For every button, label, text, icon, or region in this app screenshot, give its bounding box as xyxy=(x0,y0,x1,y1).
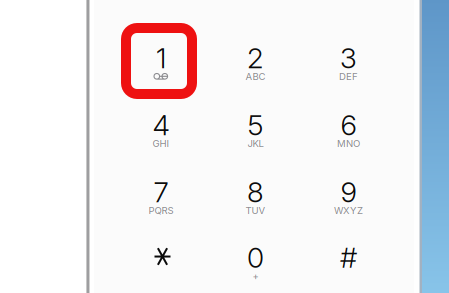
button[interactable]: 3 xyxy=(301,47,395,87)
staticText: # xyxy=(340,241,357,274)
button[interactable]: 8 xyxy=(208,181,302,221)
staticText: 3 xyxy=(340,41,357,75)
staticText: 4 xyxy=(152,108,169,142)
staticText: 5 xyxy=(247,108,263,142)
button[interactable]: 4 xyxy=(114,114,208,154)
staticText: 2 xyxy=(247,41,264,75)
button[interactable]: 7 xyxy=(114,181,208,221)
staticText: 1 xyxy=(156,41,166,75)
staticText: 8 xyxy=(247,175,264,209)
staticText: GHI xyxy=(152,138,169,149)
staticText: 0 xyxy=(247,241,264,274)
button[interactable]: 0 xyxy=(208,247,302,287)
staticText: DEF xyxy=(339,71,358,82)
staticText: TUV xyxy=(245,205,265,216)
staticText: MNO xyxy=(337,138,360,149)
button[interactable]: 2 xyxy=(208,47,302,87)
button[interactable]: 1 xyxy=(114,47,208,87)
staticText: 6 xyxy=(340,108,356,142)
staticText: ABC xyxy=(245,71,265,82)
button[interactable] xyxy=(114,247,208,287)
button[interactable]: 5 xyxy=(208,114,302,154)
staticText: + xyxy=(252,270,258,282)
button[interactable]: # xyxy=(301,247,395,287)
button[interactable]: 9 xyxy=(301,181,395,221)
staticText: WXYZ xyxy=(334,205,363,216)
staticText: PQRS xyxy=(148,205,173,216)
staticText: JKL xyxy=(247,138,263,149)
button[interactable]: 6 xyxy=(301,114,395,154)
staticText: 7 xyxy=(153,175,168,209)
staticText: 9 xyxy=(340,175,356,209)
